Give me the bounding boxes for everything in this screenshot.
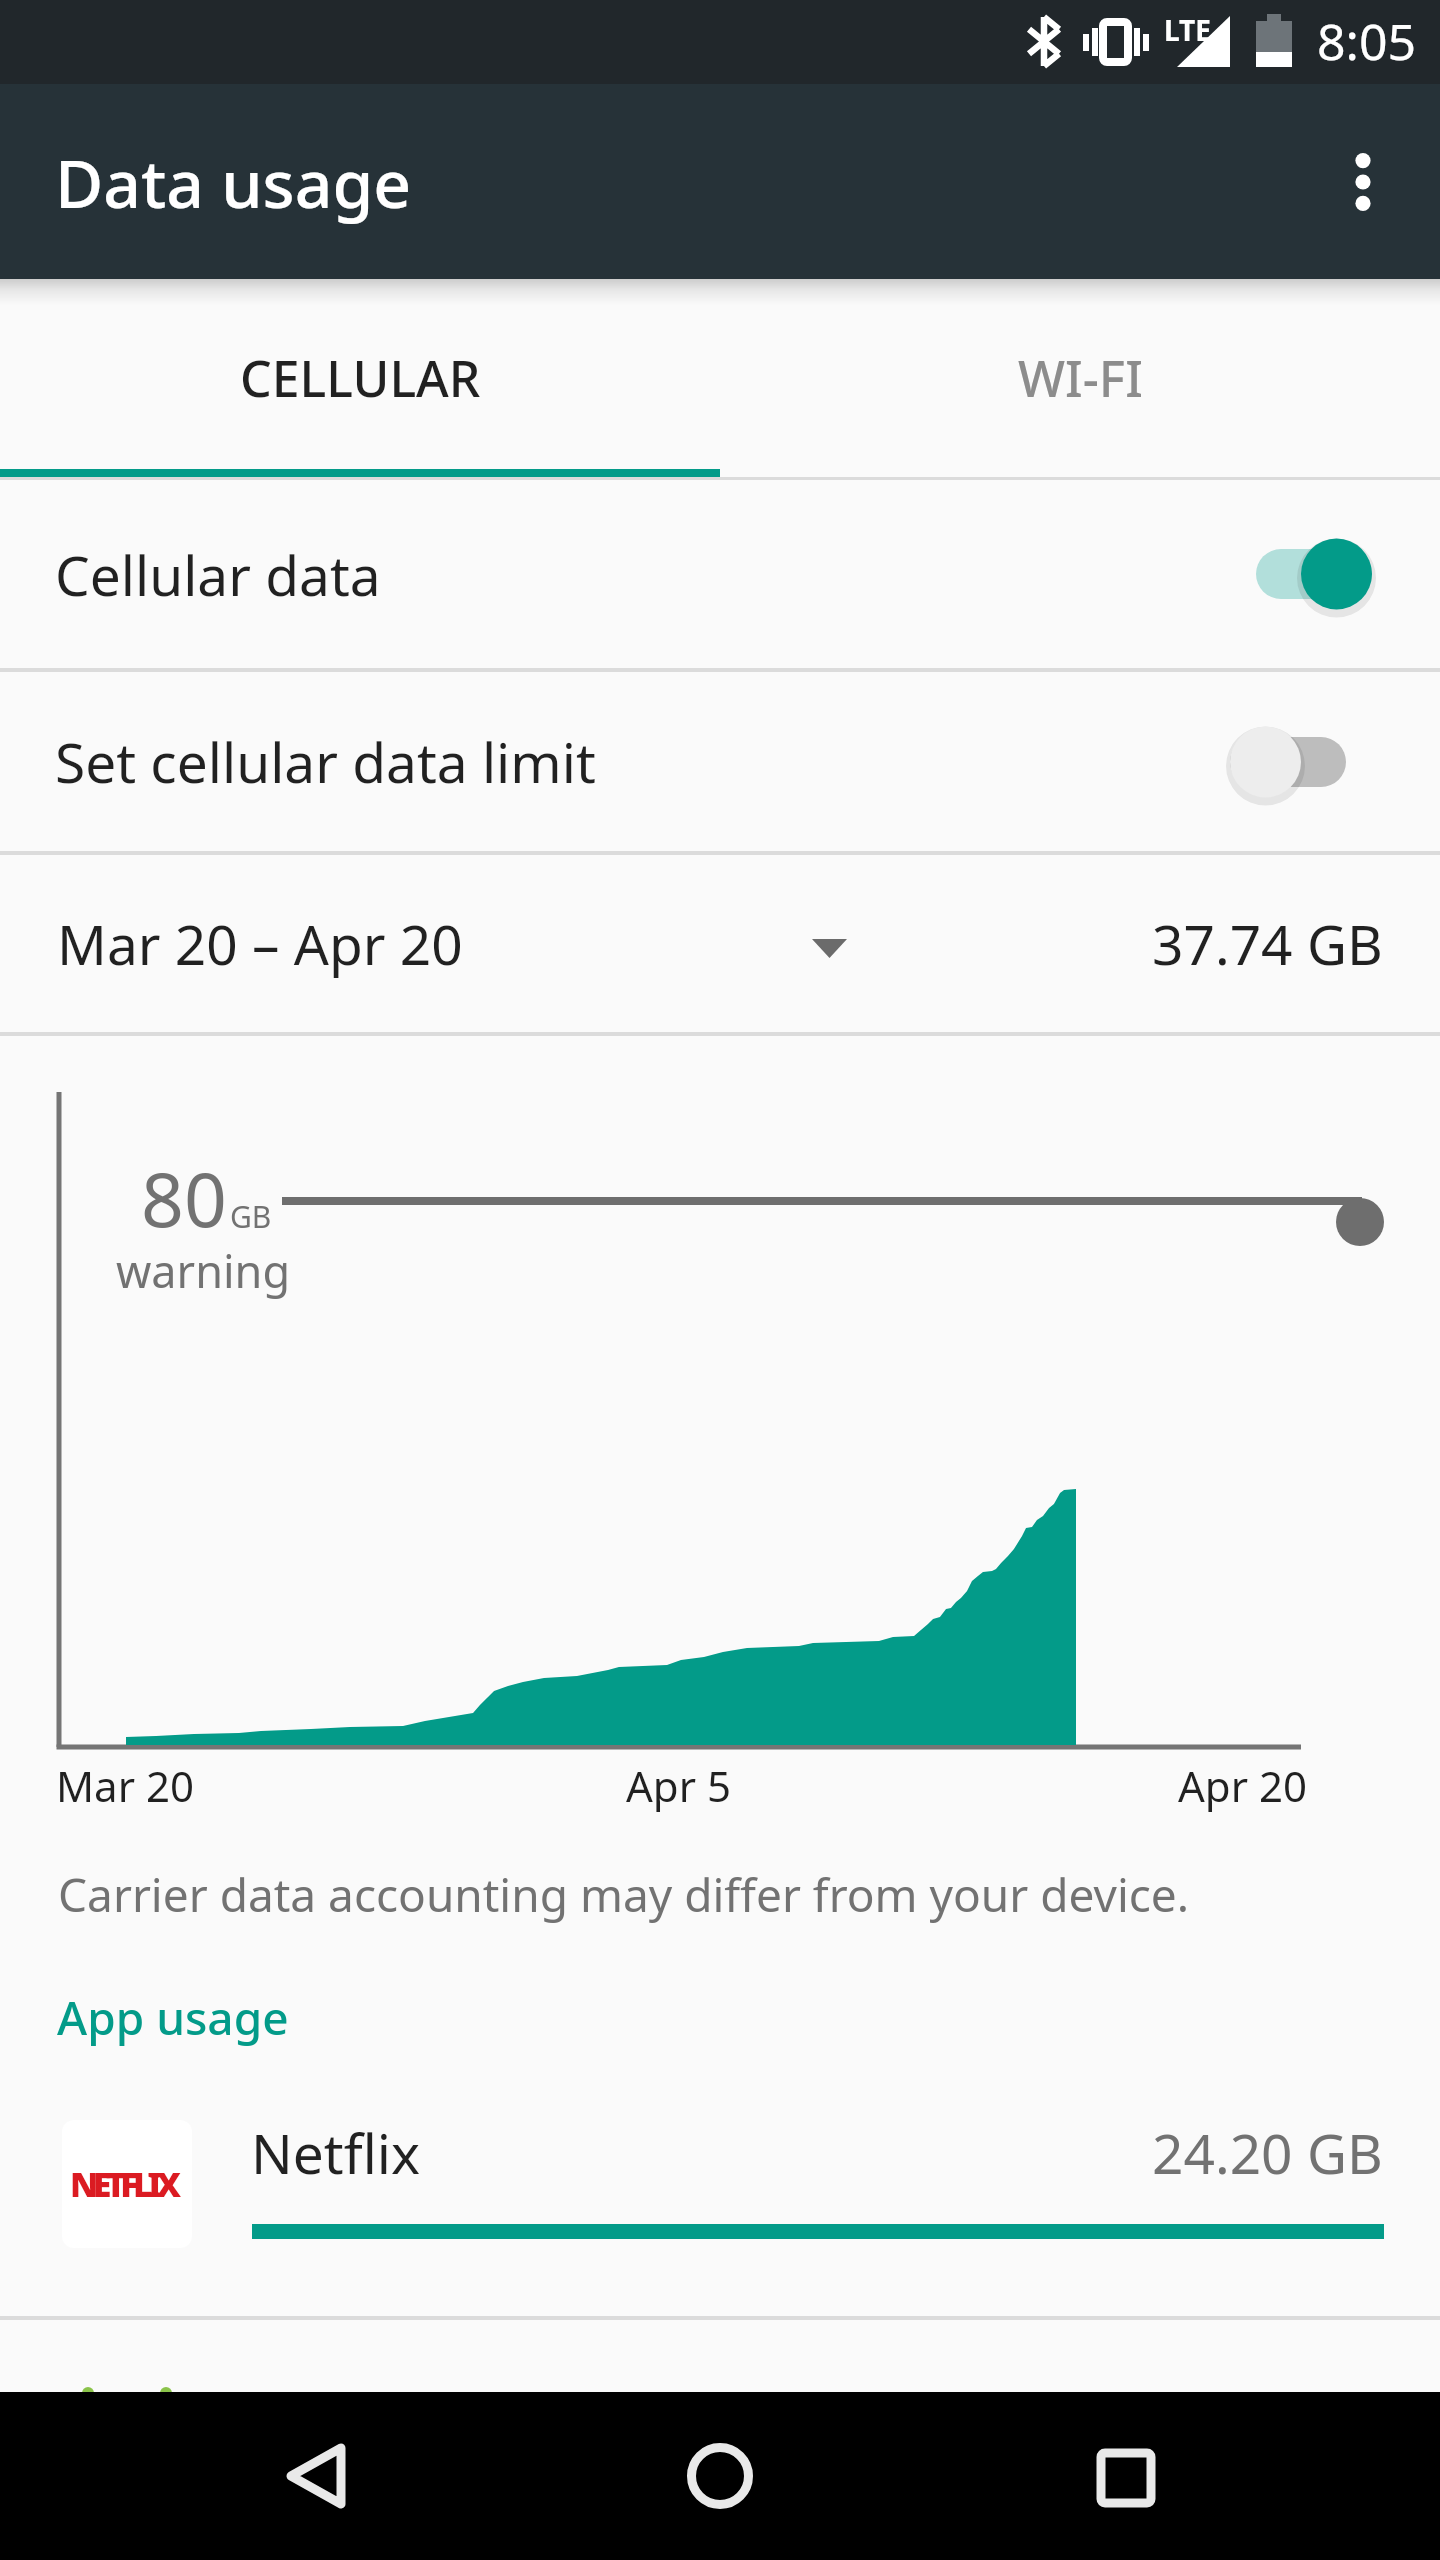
button[interactable]: Mar 20 – Apr 20 [0, 855, 1440, 1032]
staticText: Apr 20 [1178, 1757, 1307, 1814]
button[interactable]: WI-FI [720, 279, 1440, 469]
staticText: Mar 20 – Apr 20 [57, 906, 463, 981]
staticText: Data usage [55, 137, 412, 227]
staticText: Netflix [251, 2115, 421, 2190]
staticText: 24.20 GB [1152, 2115, 1383, 2190]
button[interactable]: Recent apps [1006, 2396, 1246, 2560]
staticText: GB [230, 1196, 272, 1237]
staticText: Cellular data [55, 537, 381, 612]
button[interactable]: Back [196, 2394, 436, 2558]
staticText: LTE [1164, 11, 1211, 49]
staticText: Set cellular data limit [55, 724, 596, 799]
staticText: Carrier data accounting may differ from … [58, 1863, 1190, 1926]
staticText: warning [116, 1240, 291, 1301]
staticText: 37.74 GB [1152, 906, 1383, 981]
staticText: App usage [57, 1986, 289, 2049]
staticText: WI-FI [1018, 344, 1143, 412]
button[interactable]: NETFLIX [0, 2062, 1440, 2316]
staticText: Mar 20 [56, 1757, 194, 1814]
button[interactable]: CELLULAR [0, 279, 720, 469]
staticText: 80 [141, 1147, 227, 1249]
staticText: Apr 5 [626, 1757, 731, 1814]
button[interactable]: Home [600, 2394, 840, 2558]
staticText: CELLULAR [240, 344, 481, 412]
button[interactable]: Cellular data [0, 480, 1440, 668]
staticText: 8:05 [1317, 7, 1417, 75]
button[interactable]: More options [1300, 119, 1426, 245]
staticText: NETFLIX [70, 2161, 176, 2207]
button[interactable]: Set cellular data limit [0, 672, 1440, 851]
